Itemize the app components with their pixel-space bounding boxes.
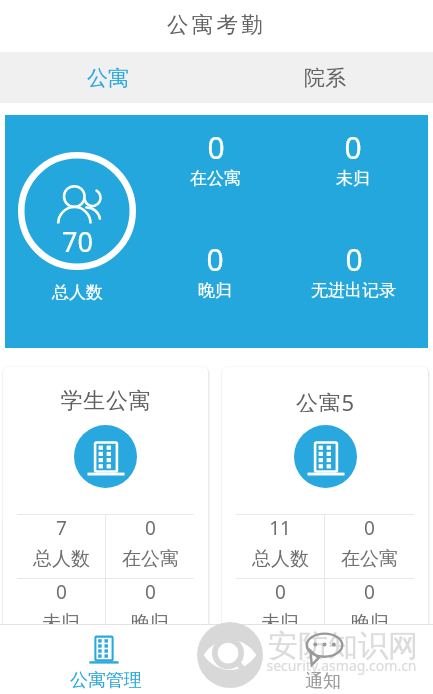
staticText: 0 [145,515,156,541]
staticText: 总人数 [52,282,103,303]
staticText: 未归 [336,168,370,189]
staticText: 在公寓 [190,168,241,189]
staticText: 院系 [304,65,346,91]
staticText: 0 [275,579,286,605]
button[interactable]: 院系 [216,52,433,103]
staticText: 0 [207,127,225,168]
staticText: 0 [345,239,363,280]
staticText: 晚归 [131,611,169,635]
staticText: security.asmag.com.cn [266,656,417,675]
staticText: 0 [56,579,67,605]
button[interactable]: 公寓5 [222,367,428,667]
staticText: 安防知识网 [268,627,418,665]
staticText: 通知 [305,670,341,693]
staticText: 学生公寓 [60,387,152,412]
staticText: 公寓管理 [70,669,142,692]
staticText: 70 [62,223,93,260]
staticText: 未归 [261,611,299,635]
staticText: 11 [269,515,291,541]
staticText: 公寓5 [296,387,355,412]
staticText: 未归 [42,611,80,635]
staticText: 0 [206,239,224,280]
staticText: 公寓考勤 [167,11,266,38]
staticText: 无进出记录 [311,280,396,301]
staticText: 0 [344,127,362,168]
staticText: 0 [145,579,156,605]
staticText: 晚归 [198,280,232,301]
staticText: 在公寓 [122,547,179,571]
button[interactable]: 公寓 [0,52,216,103]
staticText: 总人数 [252,547,309,571]
button[interactable]: 学生公寓 [3,367,208,667]
staticText: 0 [364,579,375,605]
staticText: 在公寓 [341,547,398,571]
staticText: 公寓 [87,65,129,91]
staticText: 晚归 [351,611,389,635]
staticText: 总人数 [33,547,90,571]
staticText: 0 [364,515,375,541]
button[interactable]: 公寓管理 [0,625,216,694]
button[interactable]: 通知 [216,625,433,694]
staticText: 7 [56,515,67,541]
